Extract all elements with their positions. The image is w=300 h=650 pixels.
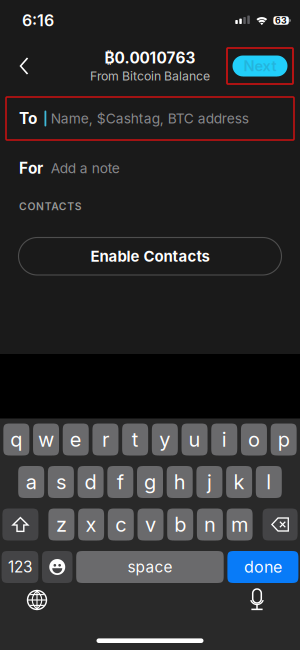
staticText: s [56, 470, 66, 494]
button[interactable]: c [108, 508, 134, 540]
staticText: i [222, 427, 227, 452]
staticText: c [115, 512, 126, 537]
button[interactable]: Next keyboard [17, 585, 57, 615]
staticText: p [278, 427, 290, 452]
button[interactable]: d [78, 466, 104, 498]
staticText: b [174, 512, 186, 537]
button[interactable]: e [63, 423, 89, 455]
button[interactable]: Shift [2, 508, 38, 540]
button[interactable]: 123 [2, 551, 38, 583]
staticText: 63 [275, 15, 287, 26]
staticText: m [231, 512, 248, 537]
button[interactable]: space [76, 551, 224, 583]
button[interactable]: For [0, 140, 300, 190]
staticText: l [266, 470, 271, 494]
staticText: u [188, 427, 200, 452]
button[interactable]: j [196, 466, 222, 498]
staticText: Next [243, 57, 276, 75]
button[interactable]: x [78, 508, 104, 540]
button[interactable]: a [18, 466, 44, 498]
staticText: h [174, 470, 186, 494]
staticText: From Bitcoin Balance [90, 69, 210, 83]
staticText: t [132, 427, 139, 452]
button[interactable]: n [197, 508, 223, 540]
staticText: g [144, 470, 156, 494]
staticText: w [38, 427, 54, 452]
staticText: space [127, 558, 172, 576]
staticText: e [70, 427, 82, 452]
staticText: CONTACTS [19, 200, 82, 213]
staticText: r [102, 427, 109, 452]
button[interactable]: q [3, 423, 29, 455]
button[interactable]: l [256, 466, 282, 498]
staticText: 6:16 [22, 11, 54, 30]
button[interactable]: z [48, 508, 74, 540]
button[interactable]: b [167, 508, 193, 540]
staticText: 123 [8, 558, 32, 576]
staticText: d [85, 470, 97, 494]
staticText: q [10, 427, 22, 452]
staticText: a [26, 470, 37, 494]
button[interactable]: done [227, 551, 298, 583]
staticText: k [234, 470, 245, 494]
button[interactable]: w [33, 423, 59, 455]
button[interactable]: t [122, 423, 148, 455]
button[interactable]: o [241, 423, 267, 455]
staticText: Add a note [51, 160, 120, 176]
button[interactable]: k [226, 466, 252, 498]
staticText: done [244, 557, 282, 577]
staticText: x [86, 512, 97, 537]
button[interactable]: g [137, 466, 163, 498]
staticText: z [56, 512, 67, 537]
button[interactable]: u [181, 423, 207, 455]
button[interactable]: v [137, 508, 163, 540]
staticText: To [19, 109, 37, 128]
button[interactable]: s [48, 466, 74, 498]
button[interactable]: i [211, 423, 237, 455]
button[interactable]: Enable Contacts [18, 237, 281, 275]
staticText: Name, $Cashtag, BTC address [51, 110, 249, 127]
staticText: Enable Contacts [90, 247, 209, 265]
staticText: y [159, 427, 170, 452]
button[interactable]: Back [8, 50, 40, 82]
staticText: o [248, 427, 260, 452]
button[interactable]: Dictate [237, 585, 277, 615]
staticText: n [204, 512, 216, 537]
staticText: j [207, 470, 212, 494]
button[interactable]: f [107, 466, 133, 498]
button[interactable]: m [227, 508, 253, 540]
button[interactable]: r [92, 423, 118, 455]
staticText: For [19, 159, 43, 178]
button[interactable]: y [152, 423, 178, 455]
staticText: f [117, 470, 124, 494]
button[interactable]: h [167, 466, 193, 498]
staticText: ₿0.0010763 [104, 49, 195, 67]
button[interactable]: p [271, 423, 297, 455]
staticText: v [145, 512, 156, 537]
button[interactable]: Delete [263, 508, 298, 540]
button[interactable]: Next [227, 48, 293, 84]
button[interactable]: To [0, 97, 300, 140]
button[interactable]: Emoji [42, 551, 72, 583]
